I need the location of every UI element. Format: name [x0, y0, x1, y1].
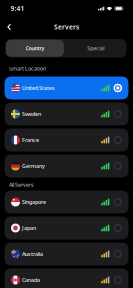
button[interactable]: France — [4, 128, 128, 151]
button[interactable]: Germany — [4, 154, 128, 177]
button[interactable]: Singapore — [4, 190, 128, 213]
button[interactable]: Japan — [4, 216, 128, 239]
button[interactable]: Australia — [4, 242, 128, 265]
staticText: Singapore — [22, 198, 46, 206]
button[interactable]: United States — [4, 76, 128, 99]
button[interactable]: Special — [65, 39, 126, 57]
staticText: Japan — [22, 224, 36, 232]
button[interactable]: Sweden — [4, 102, 128, 125]
staticText: Australia — [22, 250, 43, 258]
staticText: Sweden — [22, 110, 41, 118]
staticText: France — [22, 136, 39, 144]
button[interactable]: Canada — [4, 268, 128, 288]
staticText: United States — [22, 84, 55, 92]
staticText: Servers — [54, 23, 79, 31]
staticText: Country — [25, 45, 44, 52]
staticText: Germany — [22, 162, 45, 170]
staticText: 9:41 — [10, 4, 24, 13]
staticText: All Servers — [9, 181, 34, 188]
button[interactable]: Back — [7, 23, 12, 30]
staticText: Smart Location — [9, 65, 46, 72]
staticText: Special — [87, 45, 104, 52]
staticText: Canada — [22, 276, 40, 284]
button[interactable]: Country — [5, 39, 65, 57]
